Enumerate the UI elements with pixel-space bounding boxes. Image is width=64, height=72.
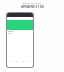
staticText: PREPARING IS WHAT [22,2,42,5]
staticText: APPARENTLY I DO [21,5,44,9]
